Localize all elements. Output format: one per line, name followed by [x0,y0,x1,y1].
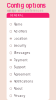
staticText: About [14,87,23,90]
staticText: Privacy [14,94,26,98]
staticText: Agreement [14,72,31,76]
staticText: GENERAL [10,14,24,17]
staticText: Manage your preferences [7,9,43,12]
button[interactable]: Privacy [7,92,49,99]
button[interactable]: Security [7,42,49,49]
button[interactable]: Agreement [7,71,49,78]
staticText: Messages [14,51,31,55]
staticText: Config options [7,2,46,9]
button[interactable]: Payment [7,56,49,64]
button[interactable]: Messages [7,49,49,56]
staticText: Security [14,44,27,48]
staticText: Ad offers [14,30,28,33]
button[interactable]: About [7,85,49,92]
button[interactable]: Support [7,64,49,71]
button[interactable]: Location [7,35,49,42]
button[interactable]: Ad offers [7,28,49,35]
button[interactable]: Notifications [7,78,49,85]
staticText: Payment [14,58,28,62]
staticText: Location [14,37,28,40]
staticText: Notifications [14,80,34,83]
staticText: Support [14,65,26,69]
button[interactable]: Name [7,21,49,28]
staticText: Name [14,22,23,26]
